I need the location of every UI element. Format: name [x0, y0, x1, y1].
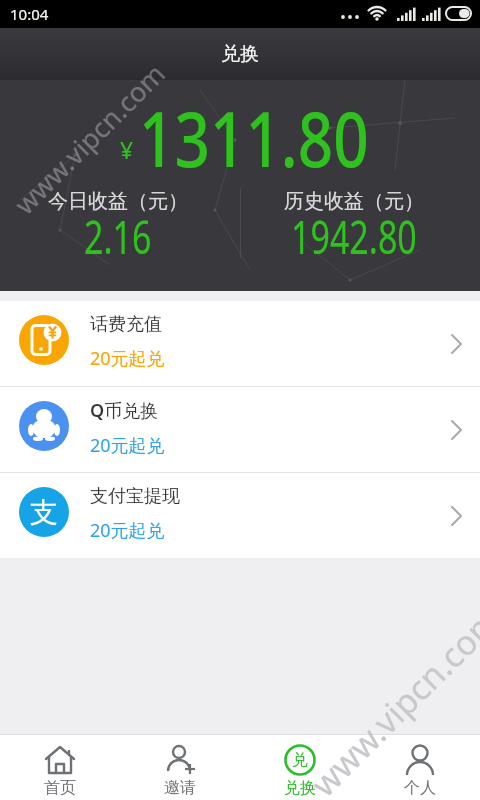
staticText: 1942.80 [291, 207, 417, 267]
button[interactable]: 兑 [240, 735, 360, 800]
staticText: 首页 [44, 778, 76, 798]
staticText: 2.16 [84, 207, 152, 267]
button[interactable]: 首页 [0, 735, 120, 800]
staticText: 20元起兑 [90, 433, 165, 458]
staticText: 邀请 [164, 778, 196, 798]
staticText: ¥ [120, 134, 134, 165]
staticText: 1311.80 [139, 87, 369, 189]
staticText: 个人 [404, 778, 436, 798]
button[interactable]: 邀请 [120, 735, 240, 800]
button[interactable]: 个人 [360, 735, 480, 800]
staticText: 兑换 [221, 42, 259, 66]
staticText: 兑 [292, 750, 308, 770]
staticText: 兑换 [284, 778, 316, 798]
staticText: 话费充值 [90, 313, 162, 336]
staticText: 20元起兑 [90, 346, 165, 371]
button[interactable]: 话费充值 [0, 301, 480, 386]
staticText: 今日收益（元） [48, 189, 188, 214]
staticText: 20元起兑 [90, 518, 165, 543]
staticText: 支付宝提现 [90, 485, 180, 508]
staticText: 10:04 [10, 4, 49, 24]
staticText: 历史收益（元） [284, 189, 424, 214]
staticText: www.vipcn.com [300, 596, 480, 800]
staticText: www.vipcn.com [6, 55, 173, 222]
staticText: 支 [30, 495, 58, 530]
button[interactable]: 支 [0, 473, 480, 558]
button[interactable]: Q币兑换 [0, 387, 480, 472]
staticText: Q币兑换 [90, 398, 159, 423]
